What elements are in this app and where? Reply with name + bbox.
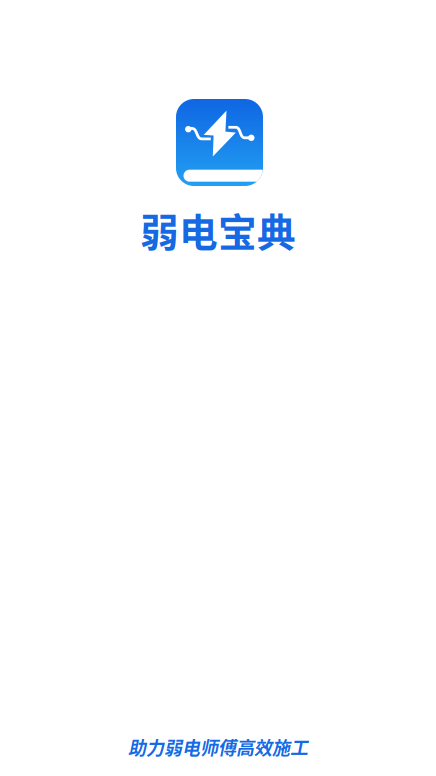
staticText: 助力弱电师傅高效施工 bbox=[128, 734, 308, 760]
staticText: 弱电宝典 bbox=[140, 202, 296, 258]
